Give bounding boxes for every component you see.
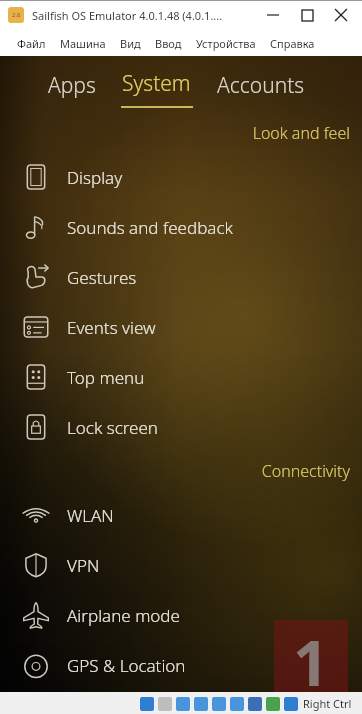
staticText: System [122,69,191,98]
staticText: Gestures [67,266,137,289]
button[interactable]: Minimize [256,1,290,29]
staticText: Справка [270,36,315,51]
button[interactable]: Файл [10,33,53,54]
button[interactable]: Close [324,1,358,29]
button[interactable]: Gestures [0,252,362,302]
button[interactable]: Sounds and feedback [0,202,362,252]
staticText: GPS & Location [67,654,186,677]
staticText: Events view [67,316,156,339]
staticText: Файл [17,36,46,51]
staticText: VPN [67,554,100,577]
staticText: Accounts [217,71,305,100]
staticText: Ввод [155,36,182,51]
button[interactable]: WLAN [0,490,362,540]
button[interactable]: Events view [0,302,362,352]
staticText: Apps [48,71,96,100]
staticText: WLAN [67,504,114,527]
button[interactable]: Accounts [213,65,309,106]
staticText: Устройства [196,36,256,51]
staticText: Right Ctrl [303,696,352,711]
button[interactable]: System [118,63,195,108]
button[interactable]: Apps [44,65,100,106]
staticText: Top menu [67,366,145,389]
staticText: Lock screen [67,416,158,439]
staticText: 1 [293,620,329,692]
button[interactable]: Машина [53,33,113,54]
button[interactable]: Maximize [290,1,324,29]
button[interactable]: GPS & Location [0,640,362,690]
button[interactable]: Top menu [0,352,362,402]
button[interactable]: VPN [0,540,362,590]
button[interactable]: Устройства [189,33,263,54]
button[interactable]: Вид [113,33,148,54]
staticText: Машина [60,36,106,51]
staticText: Display [67,166,123,189]
button[interactable]: Lock screen [0,402,362,452]
staticText: 2.6 [12,11,21,19]
staticText: Connectivity [261,460,350,482]
staticText: Вид [120,36,141,51]
button[interactable]: Ввод [148,33,189,54]
staticText: Look and feel [252,122,350,144]
button[interactable]: Display [0,152,362,202]
staticText: Airplane mode [67,604,180,627]
button[interactable]: Airplane mode [0,590,362,640]
staticText: Sailfish OS Emulator 4.0.1.48 (4.0.1.... [32,8,223,23]
button[interactable]: Справка [263,33,322,54]
staticText: Sounds and feedback [67,216,233,239]
